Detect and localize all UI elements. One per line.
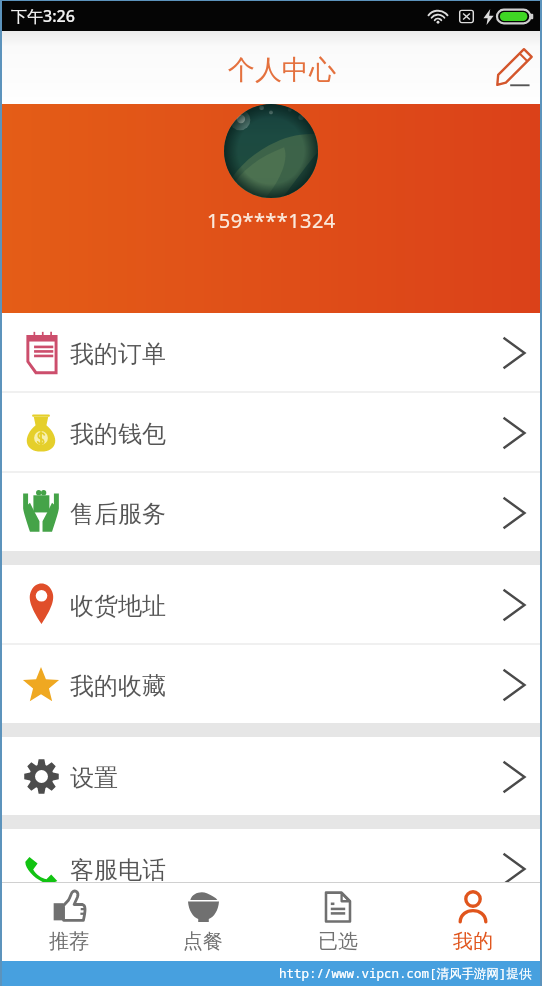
button[interactable]: 已选 [270,883,405,961]
staticText: 已选 [318,929,358,954]
staticText: http://www.vipcn.com[清风手游网]提供 [279,965,532,982]
staticText: 下午3:26 [11,5,75,27]
button[interactable]: 我的 [405,883,540,961]
staticText: 159****1324 [207,207,336,234]
button[interactable]: 客服电话 [2,829,540,882]
staticText: 售后服务 [70,499,166,529]
staticText: 推荐 [49,929,89,954]
staticText: 客服电话 [70,855,166,882]
button[interactable]: 头像 [224,104,318,198]
button[interactable]: 设置 [2,737,540,815]
staticText: 我的钱包 [70,419,166,449]
staticText: 设置 [70,763,118,793]
button[interactable]: 我的订单 [2,313,540,391]
button[interactable]: 售后服务 [2,473,540,551]
staticText: 我的订单 [70,339,166,369]
button[interactable]: 我的钱包 [2,393,540,471]
staticText: 点餐 [183,929,223,954]
button[interactable]: 收货地址 [2,565,540,643]
button[interactable]: 我的收藏 [2,645,540,723]
staticText: 我的 [453,929,493,954]
staticText: 我的收藏 [70,671,166,701]
staticText: 收货地址 [70,591,166,621]
button[interactable]: 推荐 [2,883,136,961]
staticText: 个人中心 [228,53,336,87]
button[interactable]: 点餐 [136,883,270,961]
button[interactable]: 编辑资料 [487,42,539,94]
